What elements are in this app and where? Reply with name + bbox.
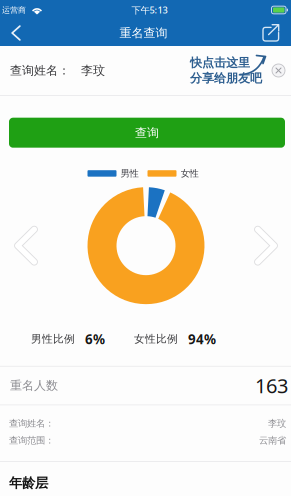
staticText: 分享给朋友吧 — [190, 71, 262, 86]
staticText: 男性 — [120, 168, 138, 179]
staticText: 下午5:13 — [131, 4, 167, 16]
staticText: 云南省 — [259, 434, 286, 446]
staticText: 94% — [188, 330, 216, 348]
staticText: 男性比例 — [31, 332, 75, 346]
button[interactable]: Share — [255, 20, 287, 46]
staticText: 6% — [85, 330, 105, 348]
staticText: 重名查询 — [119, 26, 167, 40]
staticText: 查询姓名： — [10, 63, 70, 78]
button[interactable]: Close — [268, 60, 289, 81]
button[interactable]: Next chart — [246, 221, 286, 271]
button[interactable]: Previous chart — [6, 221, 46, 271]
button[interactable]: Back — [0, 20, 32, 46]
staticText: 李玟 — [268, 417, 286, 429]
button[interactable]: 查询 — [9, 118, 285, 148]
staticText: 重名人数 — [10, 378, 58, 393]
staticText: 女性 — [180, 168, 198, 179]
staticText: 查询 — [135, 125, 159, 140]
staticText: 查询范围： — [9, 434, 54, 446]
staticText: 年龄层 — [9, 475, 48, 491]
staticText: 女性比例 — [134, 332, 178, 346]
staticText: 163 — [255, 372, 288, 399]
staticText: 快点击这里 — [190, 55, 250, 70]
staticText: 查询姓名： — [9, 417, 54, 429]
staticText: 李玟 — [81, 63, 105, 78]
staticText: 运营商 — [2, 5, 26, 15]
